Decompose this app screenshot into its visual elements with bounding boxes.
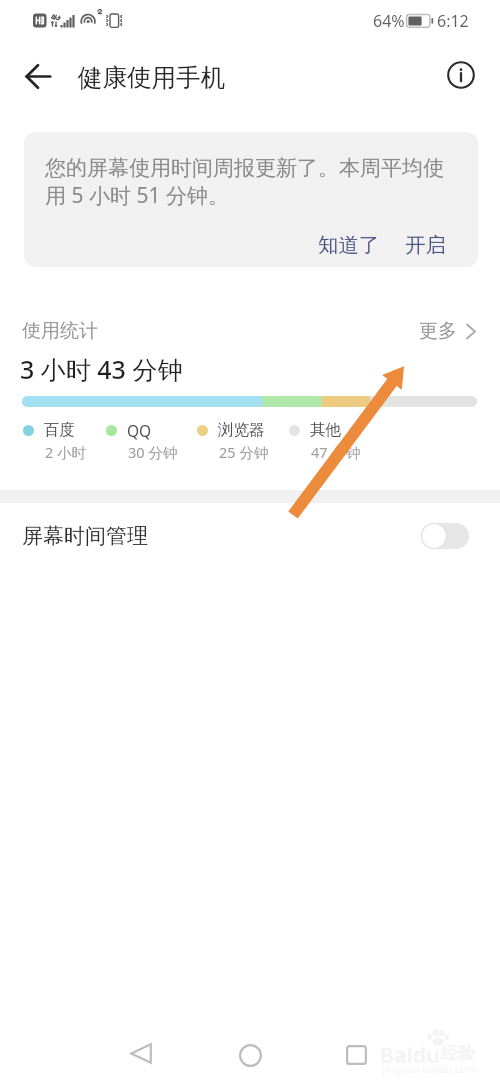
staticText: 使用统计 [22,319,98,343]
staticText: 更多 [419,319,457,343]
staticText: 其他 [310,420,341,440]
staticText: QQ [127,420,152,441]
button[interactable]: Back [12,54,64,98]
staticText: 开启 [405,232,446,258]
staticText: jingyan.baidu.com [382,1061,478,1076]
staticText: 30 分钟 [128,442,178,462]
button[interactable]: Back [118,1030,164,1076]
button[interactable]: Information [439,53,483,97]
staticText: 经验 [441,1043,475,1064]
staticText: Baidu [380,1041,440,1070]
button[interactable]: 开启 [401,223,450,267]
staticText: 浏览器 [218,420,265,440]
staticText: 47 分钟 [311,442,361,462]
staticText: 25 分钟 [219,442,269,462]
staticText: 健康使用手机 [78,62,225,93]
staticText: 64% [373,10,405,32]
button[interactable]: 知道了 [314,223,384,267]
staticText: 6:12 [437,10,469,32]
staticText: 屏幕时间管理 [22,523,148,549]
button[interactable]: 屏幕时间管理 [0,501,500,571]
staticText: 您的屏幕使用时间周报更新了。本周平均使 用 5 小时 51 分钟。 [45,155,475,209]
button[interactable]: Screen time management switch, off [421,523,469,549]
button[interactable]: Recent apps [333,1032,379,1078]
staticText: 3 小时 43 分钟 [20,352,183,386]
button[interactable]: Home [227,1032,273,1078]
staticText: 知道了 [318,232,380,258]
staticText: 2 小时 [45,442,87,462]
button[interactable]: 更多 [419,313,476,349]
staticText: 百度 [44,420,75,440]
